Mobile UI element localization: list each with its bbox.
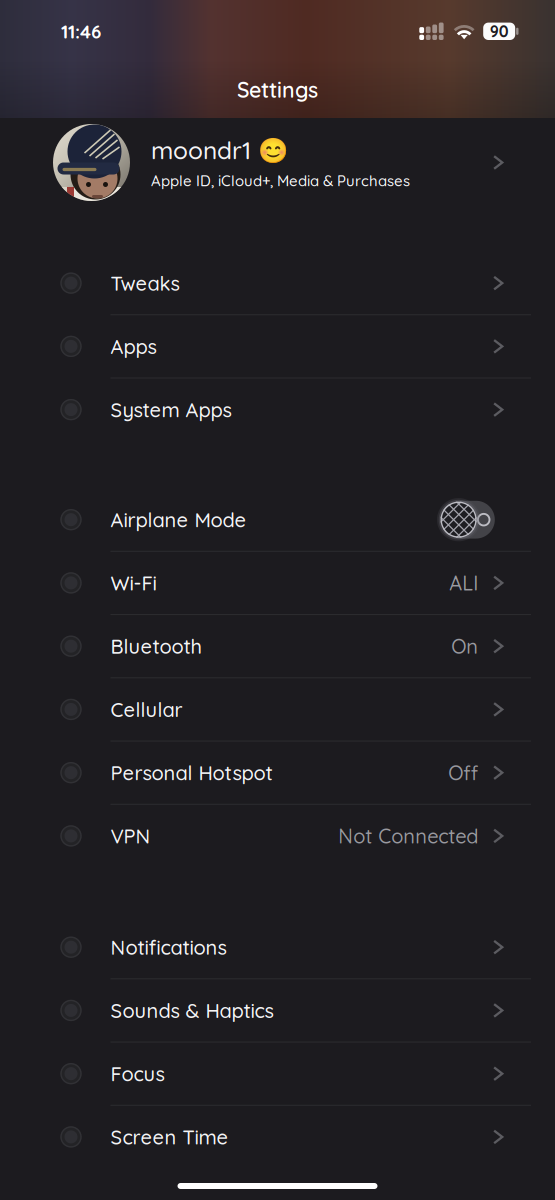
button[interactable]: Screen Time xyxy=(0,1106,555,1168)
staticText: moondr1 😊 xyxy=(151,135,288,165)
button[interactable]: VPN xyxy=(0,805,555,867)
button[interactable]: System Apps xyxy=(0,378,555,441)
staticText: Wi-Fi xyxy=(110,570,156,595)
staticText: Notifications xyxy=(110,935,226,960)
staticText: 11:46 xyxy=(61,20,101,43)
staticText: Focus xyxy=(110,1061,164,1086)
staticText: Cellular xyxy=(110,697,182,722)
button[interactable]: Wi-Fi xyxy=(0,552,555,614)
button[interactable]: Personal Hotspot xyxy=(0,741,555,804)
staticText: Sounds & Haptics xyxy=(110,998,273,1023)
staticText: Airplane Mode xyxy=(110,507,246,532)
button[interactable]: Cellular xyxy=(0,678,555,740)
button[interactable]: moondr1 😊 xyxy=(0,118,555,207)
button[interactable]: Sounds & Haptics xyxy=(0,979,555,1041)
button[interactable]: Tweaks xyxy=(0,252,555,314)
staticText: 90 xyxy=(490,21,509,41)
staticText: On xyxy=(451,634,478,659)
button[interactable]: Bluetooth xyxy=(0,615,555,677)
staticText: Screen Time xyxy=(110,1124,228,1149)
staticText: VPN xyxy=(110,823,150,848)
staticText: Settings xyxy=(237,76,318,103)
staticText: Apps xyxy=(110,334,156,359)
staticText: Off xyxy=(448,760,478,785)
staticText: Not Connected xyxy=(338,823,478,848)
staticText: Apple ID, iCloud+, Media & Purchases xyxy=(151,171,410,190)
button[interactable]: Apps xyxy=(0,315,555,377)
button[interactable]: Notifications xyxy=(0,916,555,978)
button[interactable]: Focus xyxy=(0,1042,555,1105)
button[interactable]: Airplane Mode xyxy=(0,489,555,551)
staticText: Personal Hotspot xyxy=(110,760,272,785)
staticText: Bluetooth xyxy=(110,634,202,659)
staticText: ALI xyxy=(449,570,478,595)
staticText: Tweaks xyxy=(110,271,179,296)
staticText: System Apps xyxy=(110,397,231,422)
